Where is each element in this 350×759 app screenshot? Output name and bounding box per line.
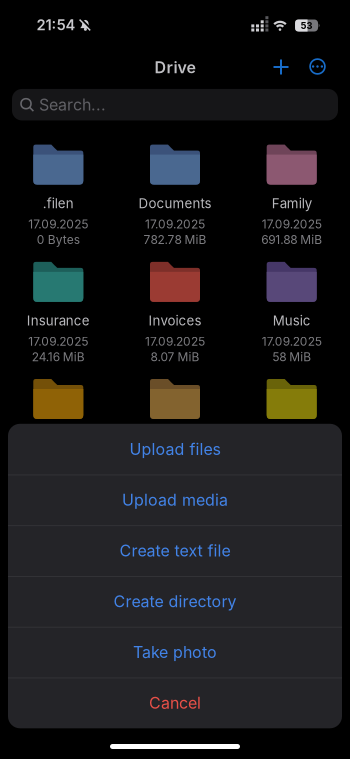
button[interactable]: Insurance <box>0 262 116 364</box>
button[interactable]: Search <box>12 89 338 120</box>
staticText: Invoices <box>148 313 201 328</box>
staticText: 0 Bytes <box>37 232 80 247</box>
staticText: 17.09.2025 <box>28 334 88 348</box>
staticText: 17.09.2025 <box>28 217 88 231</box>
button[interactable]: Music <box>234 262 350 364</box>
staticText: 782.78 MiB <box>143 232 206 247</box>
staticText: 58 MiB <box>272 350 311 364</box>
button[interactable]: Documents <box>117 145 233 247</box>
staticText: Insurance <box>27 313 90 328</box>
button[interactable]: Upload media <box>8 474 342 525</box>
staticText: Create text file <box>119 541 230 560</box>
button[interactable]: .filen <box>0 145 116 247</box>
staticText: 17.09.2025 <box>262 334 322 348</box>
staticText: Family <box>272 195 312 211</box>
button[interactable]: Create text file <box>8 525 342 576</box>
staticText: Documents <box>138 195 211 211</box>
staticText: Take photo <box>133 643 217 662</box>
staticText: 8.07 MiB <box>150 350 199 364</box>
staticText: 17.09.2025 <box>262 217 322 231</box>
staticText: .filen <box>43 195 74 211</box>
staticText: 691.88 MiB <box>261 232 322 247</box>
button[interactable]: Take photo <box>8 627 342 678</box>
staticText: Create directory <box>113 592 236 611</box>
button[interactable]: Cancel <box>8 677 342 728</box>
staticText: Cancel <box>149 693 201 712</box>
button[interactable]: Invoices <box>117 262 233 364</box>
staticText: Upload media <box>122 490 228 509</box>
staticText: 21:54 <box>36 16 75 34</box>
button[interactable]: Family <box>234 145 350 247</box>
staticText: Drive <box>154 58 195 77</box>
staticText: Search... <box>39 95 106 114</box>
button[interactable]: Upload files <box>8 424 342 475</box>
button[interactable]: Create directory <box>8 576 342 627</box>
staticText: Upload files <box>129 440 220 459</box>
button[interactable]: More <box>309 58 326 75</box>
staticText: 53 <box>301 20 313 31</box>
button[interactable]: Add <box>273 59 288 74</box>
staticText: 17.09.2025 <box>145 334 205 348</box>
staticText: 17.09.2025 <box>145 217 205 231</box>
staticText: Music <box>273 313 311 328</box>
staticText: 24.16 MiB <box>32 350 85 364</box>
